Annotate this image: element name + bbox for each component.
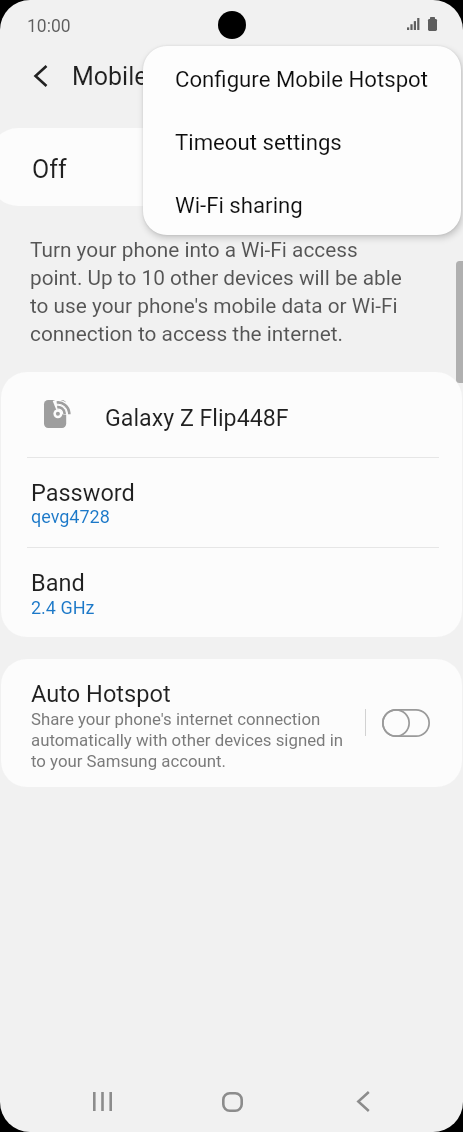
staticText: Timeout settings — [175, 129, 342, 155]
staticText: Off — [32, 155, 67, 184]
staticText: 2.4 GHz — [31, 597, 95, 618]
staticText: Turn your phone into a Wi-Fi access poin… — [30, 238, 408, 346]
button[interactable]: Wi-Fi sharing — [143, 173, 461, 235]
button[interactable]: Timeout settings — [143, 110, 461, 173]
staticText: Band — [31, 569, 85, 597]
staticText: Configure Mobile Hotspot — [175, 66, 429, 92]
button[interactable]: Galaxy Z Flip448F — [1, 372, 462, 457]
staticText: Mobile Hotspot — [72, 62, 244, 91]
staticText: Password — [31, 479, 135, 507]
button[interactable]: Auto Hotspot switch — [375, 694, 437, 752]
staticText: 10:00 — [27, 16, 71, 37]
staticText: Wi-Fi sharing — [175, 192, 303, 218]
button[interactable]: Navigate up — [20, 56, 60, 96]
staticText: Share your phone's internet connection a… — [31, 709, 351, 771]
button[interactable]: Home — [188, 1080, 276, 1124]
staticText: Galaxy Z Flip448F — [105, 404, 289, 431]
button[interactable]: Password — [1, 458, 462, 547]
button[interactable]: Recent apps — [58, 1079, 146, 1123]
staticText: qevg4728 — [31, 506, 110, 527]
button[interactable]: Off — [0, 128, 453, 206]
button[interactable]: Back — [318, 1079, 406, 1123]
button[interactable]: Configure Mobile Hotspot — [143, 47, 461, 110]
button[interactable]: Band — [1, 548, 462, 637]
staticText: Auto Hotspot — [31, 680, 171, 708]
